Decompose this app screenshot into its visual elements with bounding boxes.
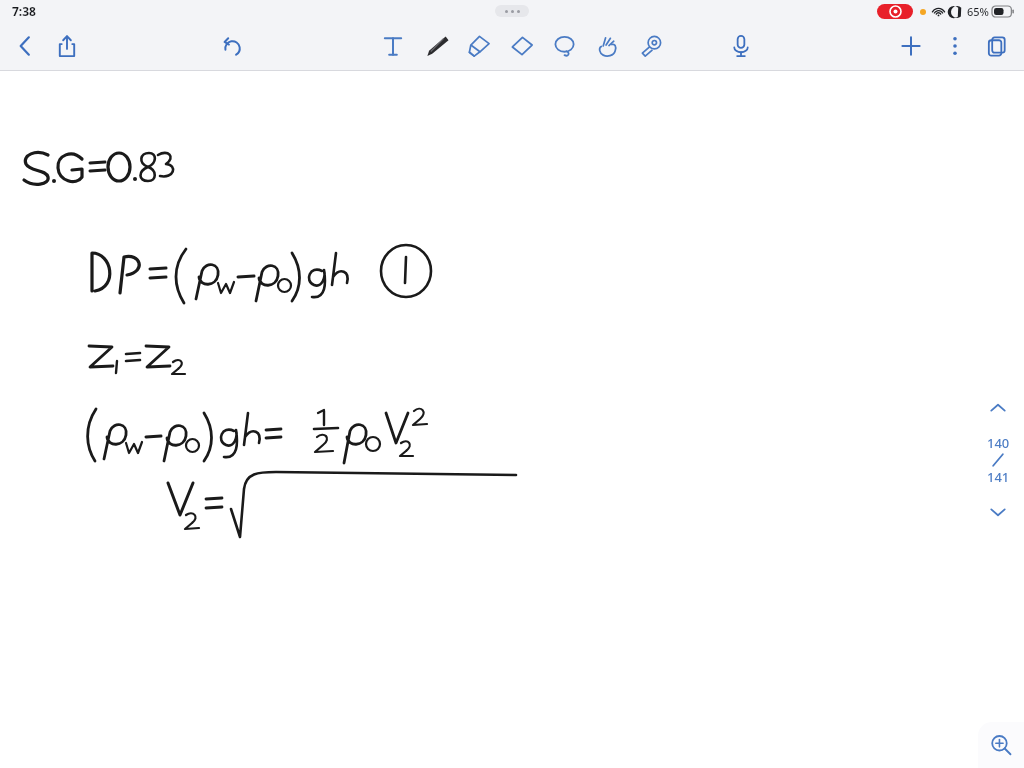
button[interactable]: Highlighter: [464, 31, 494, 61]
button[interactable]: Previous page: [984, 394, 1012, 422]
button[interactable]: Microphone: [726, 31, 756, 61]
staticText: 65%: [967, 4, 989, 19]
staticText: 141: [987, 468, 1010, 486]
button[interactable]: Pen tool: [422, 31, 452, 61]
button[interactable]: Add: [896, 31, 926, 61]
button[interactable]: Share: [52, 31, 82, 61]
button[interactable]: Pages: [982, 31, 1012, 61]
button[interactable]: Multitasking controls: [495, 5, 529, 17]
button[interactable]: Hand tool: [593, 31, 623, 61]
button[interactable]: Sticker tool: [636, 31, 666, 61]
staticText: 140: [987, 434, 1010, 452]
button[interactable]: More options: [940, 31, 970, 61]
button[interactable]: Text tool: [378, 31, 408, 61]
button[interactable]: Back: [10, 31, 40, 61]
button[interactable]: Zoom in: [978, 722, 1024, 768]
button[interactable]: Next page: [984, 498, 1012, 526]
button[interactable]: Lasso: [550, 31, 580, 61]
staticText: 7:38: [12, 3, 36, 19]
button[interactable]: Eraser: [507, 31, 537, 61]
button[interactable]: Undo: [218, 31, 248, 61]
